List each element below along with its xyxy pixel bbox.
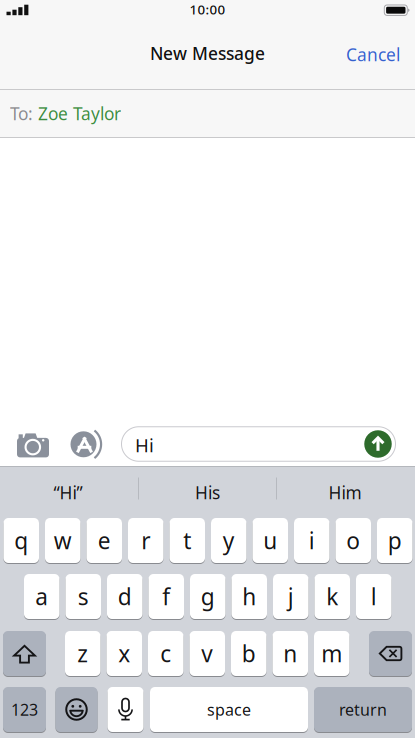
- staticText: z: [77, 638, 88, 668]
- staticText: f: [162, 581, 170, 611]
- staticText: s: [78, 581, 89, 611]
- staticText: p: [388, 525, 402, 555]
- staticText: d: [118, 581, 132, 611]
- staticText: x: [118, 638, 130, 668]
- staticText: n: [283, 638, 297, 668]
- staticText: y: [223, 525, 235, 555]
- staticText: space: [207, 699, 251, 720]
- staticText: e: [98, 525, 111, 555]
- staticText: j: [288, 581, 294, 611]
- staticText: t: [183, 525, 191, 555]
- staticText: Cancel: [346, 43, 400, 66]
- staticText: c: [160, 638, 171, 668]
- staticText: 123: [11, 699, 38, 720]
- staticText: a: [35, 581, 48, 611]
- staticText: New Message: [150, 42, 265, 65]
- staticText: h: [242, 581, 256, 611]
- staticText: Zoe Taylor: [38, 102, 121, 125]
- staticText: Hi: [135, 433, 154, 457]
- staticText: i: [309, 525, 315, 555]
- staticText: “Hi”: [53, 481, 82, 504]
- staticText: q: [14, 525, 28, 555]
- staticText: o: [346, 525, 360, 555]
- staticText: return: [339, 699, 387, 720]
- staticText: Him: [328, 481, 361, 504]
- staticText: b: [242, 638, 256, 668]
- staticText: 10:00: [189, 0, 225, 18]
- staticText: g: [201, 581, 215, 611]
- staticText: w: [54, 525, 72, 555]
- staticText: His: [195, 481, 220, 504]
- staticText: r: [141, 525, 150, 555]
- staticText: u: [263, 525, 277, 555]
- staticText: l: [371, 581, 377, 611]
- staticText: v: [201, 638, 213, 668]
- staticText: k: [326, 581, 338, 611]
- staticText: To:: [10, 102, 33, 125]
- staticText: m: [321, 638, 342, 668]
